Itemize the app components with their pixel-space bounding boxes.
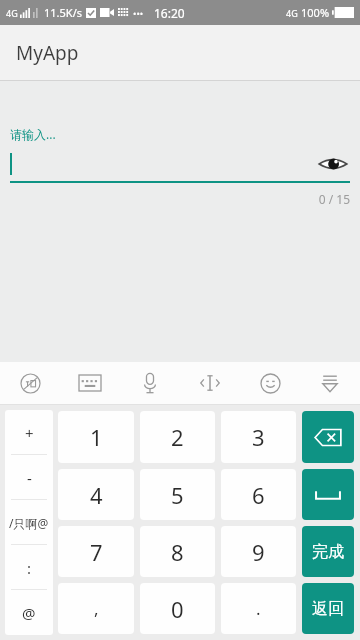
button[interactable]: . [221, 583, 296, 634]
button[interactable]: 5 [140, 469, 215, 520]
staticText: 7 [90, 537, 103, 567]
button[interactable]: Keyboard [60, 362, 120, 404]
staticText: ••• [133, 7, 144, 19]
button[interactable]: Delete [302, 411, 354, 463]
staticText: 4G [286, 7, 298, 19]
button[interactable]: - [5, 455, 53, 500]
staticText: /只啊@ [9, 515, 49, 531]
button[interactable]: /只啊@ [5, 500, 53, 545]
staticText: + [25, 423, 34, 443]
staticText: MyApp [16, 40, 79, 66]
staticText: 完成 [312, 542, 344, 562]
staticText: @ [22, 603, 36, 623]
button[interactable]: Emoji [240, 362, 300, 404]
button[interactable]: 返回 [302, 583, 354, 634]
staticText: 9 [252, 537, 265, 567]
button[interactable]: 完成 [302, 526, 354, 577]
staticText: : [27, 558, 32, 578]
staticText: 2 [171, 422, 184, 452]
button[interactable]: Space [302, 469, 354, 520]
staticText: 4 [90, 480, 103, 510]
staticText: 16:20 [154, 5, 185, 21]
button[interactable]: + [5, 410, 53, 455]
staticText: 返回 [312, 599, 344, 619]
staticText: 100% [301, 5, 330, 20]
button[interactable]: 6 [221, 469, 296, 520]
button[interactable]: Hide keyboard [300, 362, 360, 404]
button[interactable]: , [58, 583, 134, 634]
button[interactable]: 3 [221, 411, 296, 463]
button[interactable]: 2 [140, 411, 215, 463]
staticText: 8 [171, 537, 184, 567]
button[interactable]: 8 [140, 526, 215, 577]
button[interactable]: @ [5, 590, 53, 635]
button[interactable]: 7 [58, 526, 134, 577]
button[interactable]: : [5, 545, 53, 590]
staticText: 5 [171, 480, 184, 510]
button[interactable]: Voice input [120, 362, 180, 404]
staticText: 请输入... [10, 126, 56, 142]
button[interactable]: 9 [221, 526, 296, 577]
staticText: - [27, 468, 32, 488]
staticText: 0 [171, 594, 184, 624]
staticText: 11.5K/s [44, 5, 82, 20]
staticText: 1 [90, 422, 103, 452]
staticText: . [256, 597, 261, 620]
button[interactable]: 1 [58, 411, 134, 463]
button[interactable]: Input method [0, 362, 60, 404]
staticText: 0 / 15 [10, 191, 350, 207]
staticText: 3 [252, 422, 265, 452]
button[interactable]: Move cursor [180, 362, 240, 404]
button[interactable]: 0 [140, 583, 215, 634]
staticText: 6 [252, 480, 265, 510]
button[interactable]: Toggle password visibility [316, 153, 350, 175]
staticText: , [94, 597, 99, 620]
staticText: 4G [6, 7, 18, 19]
button[interactable]: 4 [58, 469, 134, 520]
